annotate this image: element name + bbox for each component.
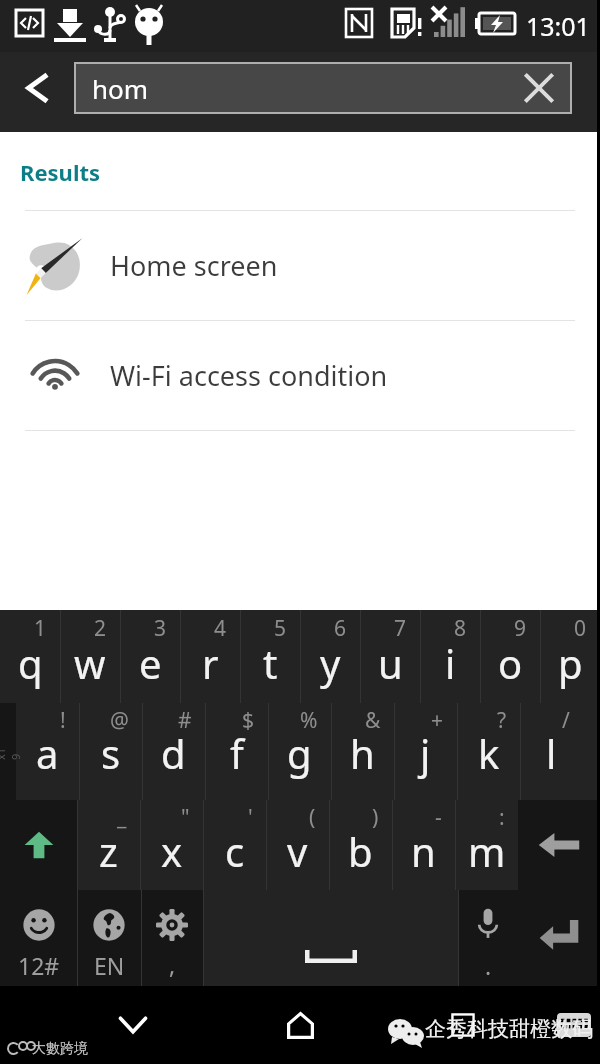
staticText: !: [60, 706, 66, 735]
button[interactable]: Back: [109, 1001, 157, 1049]
staticText: v: [287, 824, 308, 878]
staticText: t: [263, 636, 278, 690]
staticText: (: [309, 803, 316, 832]
staticText: ,: [169, 949, 176, 980]
staticText: -: [435, 803, 442, 832]
staticText: ): [372, 803, 379, 832]
staticText: 4: [214, 614, 227, 643]
button[interactable]: 8: [420, 610, 480, 703]
button[interactable]: Home screen: [0, 211, 600, 320]
staticText: +: [431, 706, 444, 735]
staticText: 3: [154, 614, 167, 643]
staticText: r: [202, 636, 219, 690]
button[interactable]: +: [394, 703, 457, 800]
staticText: s: [101, 726, 121, 780]
staticText: Home screen: [110, 247, 278, 284]
staticText: 12#: [18, 950, 60, 981]
button[interactable]: .: [458, 890, 518, 986]
staticText: k: [478, 726, 500, 780]
button[interactable]: -: [392, 800, 455, 890]
staticText: 9: [514, 614, 527, 643]
button[interactable]: Wi-Fi access condition: [0, 321, 600, 430]
button[interactable]: Clear: [513, 62, 565, 114]
button[interactable]: ': [203, 800, 266, 890]
staticText: 0: [574, 614, 587, 643]
staticText: @: [110, 706, 129, 735]
staticText: y: [320, 636, 341, 690]
button[interactable]: 12#: [0, 890, 77, 986]
button[interactable]: ,: [141, 890, 203, 986]
button[interactable]: @: [79, 703, 142, 800]
staticText: 2: [94, 614, 107, 643]
button[interactable]: #: [142, 703, 205, 800]
button[interactable]: 5: [240, 610, 300, 703]
button[interactable]: hom: [74, 62, 572, 114]
button[interactable]: Space: [203, 890, 458, 986]
button[interactable]: 4: [180, 610, 240, 703]
button[interactable]: 3: [120, 610, 180, 703]
button[interactable]: 7: [360, 610, 420, 703]
staticText: %: [300, 706, 318, 735]
staticText: z: [99, 824, 118, 878]
button[interactable]: Enter: [518, 890, 600, 986]
staticText: 13:01: [526, 9, 590, 43]
staticText: 6: [334, 614, 347, 643]
staticText: :: [499, 803, 505, 832]
staticText: j: [420, 726, 431, 780]
staticText: EN: [94, 950, 125, 981]
button[interactable]: Home: [276, 1001, 324, 1049]
button[interactable]: ": [140, 800, 203, 890]
button[interactable]: !: [16, 703, 79, 800]
staticText: x19: [0, 744, 23, 760]
button[interactable]: Recents: [439, 1001, 487, 1049]
button[interactable]: ?: [457, 703, 520, 800]
button[interactable]: EN: [77, 890, 141, 986]
button[interactable]: Shift: [0, 800, 77, 890]
button[interactable]: /: [520, 703, 583, 800]
button[interactable]: Back: [11, 62, 63, 114]
button[interactable]: %: [268, 703, 331, 800]
button[interactable]: 0: [540, 610, 600, 703]
staticText: 7: [394, 614, 407, 643]
button[interactable]: 9: [480, 610, 540, 703]
staticText: #: [178, 706, 192, 735]
staticText: q: [18, 636, 43, 690]
staticText: f: [230, 726, 244, 780]
staticText: Results: [20, 157, 101, 187]
staticText: 企秀科技甜橙数码: [425, 1016, 593, 1042]
staticText: b: [348, 824, 373, 878]
staticText: .: [485, 950, 492, 981]
staticText: o: [498, 636, 523, 690]
staticText: 8: [454, 614, 467, 643]
staticText: i: [445, 636, 456, 690]
staticText: Wi-Fi access condition: [110, 357, 388, 394]
button[interactable]: Keyboard: [550, 1001, 598, 1049]
button[interactable]: _: [77, 800, 140, 890]
staticText: 1: [34, 614, 47, 643]
button[interactable]: ): [329, 800, 392, 890]
staticText: $: [242, 706, 255, 735]
staticText: x: [161, 824, 183, 878]
staticText: g: [287, 726, 312, 780]
staticText: n: [411, 824, 436, 878]
staticText: _: [117, 803, 127, 832]
staticText: m: [468, 824, 506, 878]
staticText: hom: [92, 71, 149, 106]
staticText: a: [36, 726, 59, 780]
button[interactable]: (: [266, 800, 329, 890]
staticText: &: [365, 706, 381, 735]
button[interactable]: :: [455, 800, 518, 890]
staticText: ?: [497, 706, 507, 735]
staticText: e: [139, 636, 162, 690]
button[interactable]: &: [331, 703, 394, 800]
button[interactable]: $: [205, 703, 268, 800]
button[interactable]: 2: [60, 610, 120, 703]
staticText: /: [562, 706, 570, 735]
staticText: u: [378, 636, 403, 690]
button[interactable]: 1: [0, 610, 60, 703]
button[interactable]: 6: [300, 610, 360, 703]
staticText: d: [161, 726, 186, 780]
staticText: ": [181, 803, 190, 832]
button[interactable]: Backspace: [518, 800, 600, 890]
staticText: 5: [274, 614, 287, 643]
